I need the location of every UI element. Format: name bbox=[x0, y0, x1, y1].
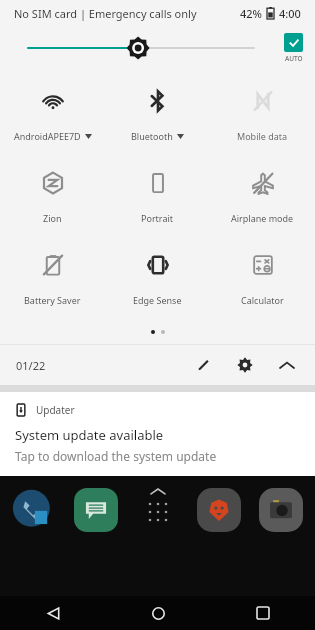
button[interactable]: Zion bbox=[0, 156, 105, 238]
staticText: Updater bbox=[36, 403, 75, 417]
staticText: No SIM card | Emergency calls only bbox=[14, 6, 197, 21]
staticText: Battery Saver bbox=[24, 294, 81, 306]
button[interactable]: Portrait bbox=[105, 156, 210, 238]
button[interactable]: Edge Sense bbox=[105, 238, 210, 320]
button[interactable] bbox=[28, 33, 270, 63]
button[interactable]: Airplane mode bbox=[210, 156, 315, 238]
button[interactable]: Messages bbox=[74, 488, 118, 532]
staticText: 01/22 bbox=[16, 358, 46, 373]
staticText: System update available bbox=[15, 426, 164, 444]
button[interactable]: Brave browser bbox=[197, 488, 241, 532]
staticText: AndroidAPEE7D bbox=[14, 130, 81, 142]
button[interactable]: Settings bbox=[231, 351, 259, 379]
staticText: Portrait bbox=[141, 212, 174, 224]
staticText: Tap to download the system update bbox=[15, 448, 217, 464]
button[interactable]: Edit bbox=[189, 351, 217, 379]
staticText: 4:00 bbox=[279, 6, 301, 21]
staticText: AUTO bbox=[285, 54, 303, 63]
button[interactable]: All apps bbox=[136, 488, 180, 524]
button[interactable]: AUTO bbox=[282, 31, 305, 65]
staticText: Mobile data bbox=[237, 130, 288, 142]
button[interactable]: Updater bbox=[0, 392, 315, 476]
button[interactable]: Battery Saver bbox=[0, 238, 105, 320]
button[interactable]: Calculator bbox=[210, 238, 315, 320]
staticText: Bluetooth bbox=[131, 130, 173, 142]
staticText: 42% bbox=[240, 6, 262, 21]
staticText: Zion bbox=[43, 212, 62, 224]
button[interactable]: Phone bbox=[12, 488, 56, 532]
staticText: Airplane mode bbox=[231, 212, 294, 224]
button[interactable]: Camera bbox=[259, 488, 303, 532]
staticText: Calculator bbox=[241, 294, 284, 306]
button[interactable]: Collapse bbox=[273, 351, 301, 379]
button[interactable]: Recents bbox=[243, 596, 283, 630]
button[interactable]: Home bbox=[138, 596, 178, 630]
button[interactable]: Bluetooth bbox=[105, 74, 210, 156]
staticText: Edge Sense bbox=[133, 294, 182, 306]
button[interactable]: Mobile data bbox=[210, 74, 315, 156]
button[interactable]: Back bbox=[33, 596, 73, 630]
button[interactable]: AndroidAPEE7D bbox=[0, 74, 105, 156]
